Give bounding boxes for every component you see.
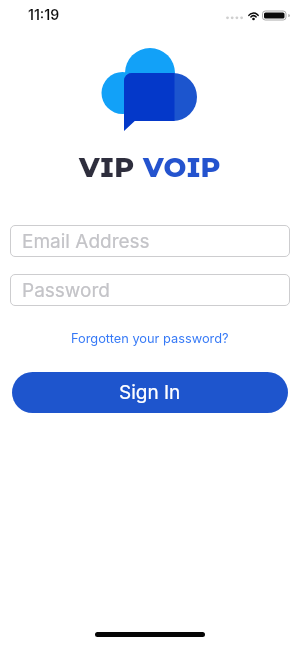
staticText: 11:19: [28, 6, 60, 23]
button[interactable]: Sign In: [12, 372, 288, 413]
staticText: VIP VOIP: [79, 151, 222, 184]
button[interactable]: Forgotten your password?: [71, 331, 229, 346]
staticText: Email Address: [22, 230, 150, 253]
staticText: Password: [22, 279, 110, 302]
button[interactable]: Password: [10, 274, 290, 306]
button[interactable]: Email Address: [10, 225, 290, 257]
staticText: Sign In: [119, 381, 181, 404]
